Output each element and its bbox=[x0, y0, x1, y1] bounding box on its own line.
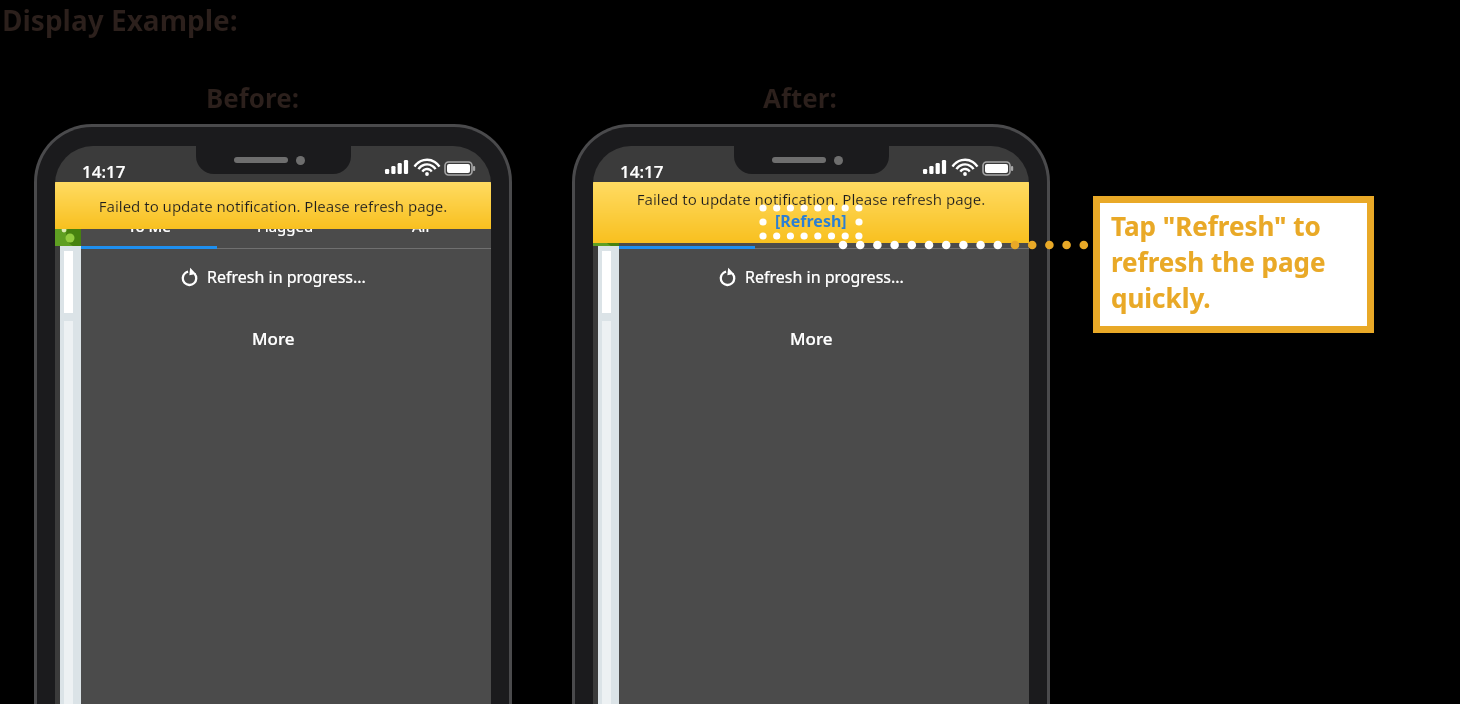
staticText: 14:17 bbox=[620, 160, 664, 183]
staticText: More bbox=[790, 327, 833, 350]
button[interactable]: [Refresh] bbox=[775, 210, 847, 232]
other: Refreshing bbox=[180, 268, 199, 287]
staticText: Display Example: bbox=[2, 1, 238, 39]
staticText: Tap "Refresh" to refresh the page quickl… bbox=[1111, 208, 1361, 316]
staticText: Refresh in progress... bbox=[745, 266, 904, 288]
staticText: All bbox=[412, 216, 430, 236]
button[interactable]: To Me bbox=[81, 204, 217, 248]
button[interactable]: More bbox=[593, 324, 1029, 352]
staticText: All bbox=[950, 216, 968, 236]
staticText: Flagged bbox=[795, 216, 852, 236]
button[interactable]: More bbox=[55, 324, 491, 352]
staticText: Refresh in progress... bbox=[207, 266, 366, 288]
button[interactable]: Refreshing bbox=[593, 262, 1029, 292]
staticText: To Me bbox=[128, 216, 171, 236]
staticText: 14:17 bbox=[82, 160, 126, 183]
button[interactable]: Failed to update notification. Please re… bbox=[593, 182, 1029, 243]
staticText: Failed to update notification. Please re… bbox=[593, 189, 1029, 209]
staticText: To Me bbox=[666, 216, 709, 236]
staticText: Before: bbox=[206, 80, 300, 115]
button[interactable]: To Me bbox=[619, 204, 755, 248]
button[interactable]: Tap "Refresh" to refresh the page quickl… bbox=[1100, 203, 1367, 326]
button[interactable]: Flagged bbox=[217, 204, 353, 248]
staticText: Flagged bbox=[257, 216, 314, 236]
button[interactable]: Refreshing bbox=[55, 262, 491, 292]
staticText: [Refresh] bbox=[775, 210, 847, 232]
button[interactable]: All bbox=[353, 204, 489, 248]
staticText: Failed to update notification. Please re… bbox=[55, 196, 491, 216]
staticText: After: bbox=[763, 80, 837, 115]
button[interactable]: Failed to update notification. Please re… bbox=[55, 182, 491, 229]
button[interactable]: Flagged bbox=[755, 204, 891, 248]
staticText: More bbox=[252, 327, 295, 350]
other: Refreshing bbox=[718, 268, 737, 287]
button[interactable]: All bbox=[891, 204, 1027, 248]
